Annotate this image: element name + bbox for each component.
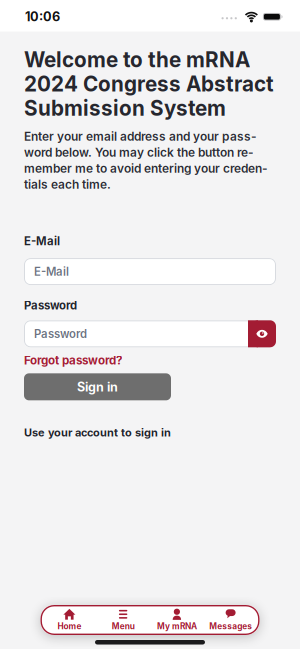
staticText: Menu bbox=[112, 621, 135, 631]
staticText: Welcome to the mRNA 2024 Congress Abstra… bbox=[24, 47, 274, 120]
button[interactable]: Home bbox=[42, 609, 96, 631]
staticText: Messages bbox=[209, 621, 252, 631]
button[interactable]: Sign in bbox=[24, 373, 171, 400]
staticText: E-Mail bbox=[34, 265, 69, 278]
staticText: Forgot password? bbox=[24, 353, 122, 367]
staticText: 10:06 bbox=[25, 9, 60, 24]
button[interactable]: Messages bbox=[204, 609, 258, 631]
staticText: Sign in bbox=[77, 379, 118, 394]
staticText: Password bbox=[34, 327, 87, 341]
button[interactable]: Menu bbox=[96, 609, 150, 631]
button[interactable]: Show password bbox=[248, 320, 276, 347]
staticText: Home bbox=[57, 621, 81, 631]
staticText: E-Mail bbox=[24, 234, 60, 248]
staticText: Password bbox=[24, 299, 77, 312]
staticText: Enter your email address and your pass- … bbox=[24, 128, 268, 192]
staticText: My mRNA bbox=[157, 621, 197, 631]
button[interactable]: My mRNA bbox=[150, 609, 204, 631]
staticText: Use your account to sign in bbox=[24, 426, 171, 439]
button[interactable]: Forgot password? bbox=[24, 353, 122, 367]
